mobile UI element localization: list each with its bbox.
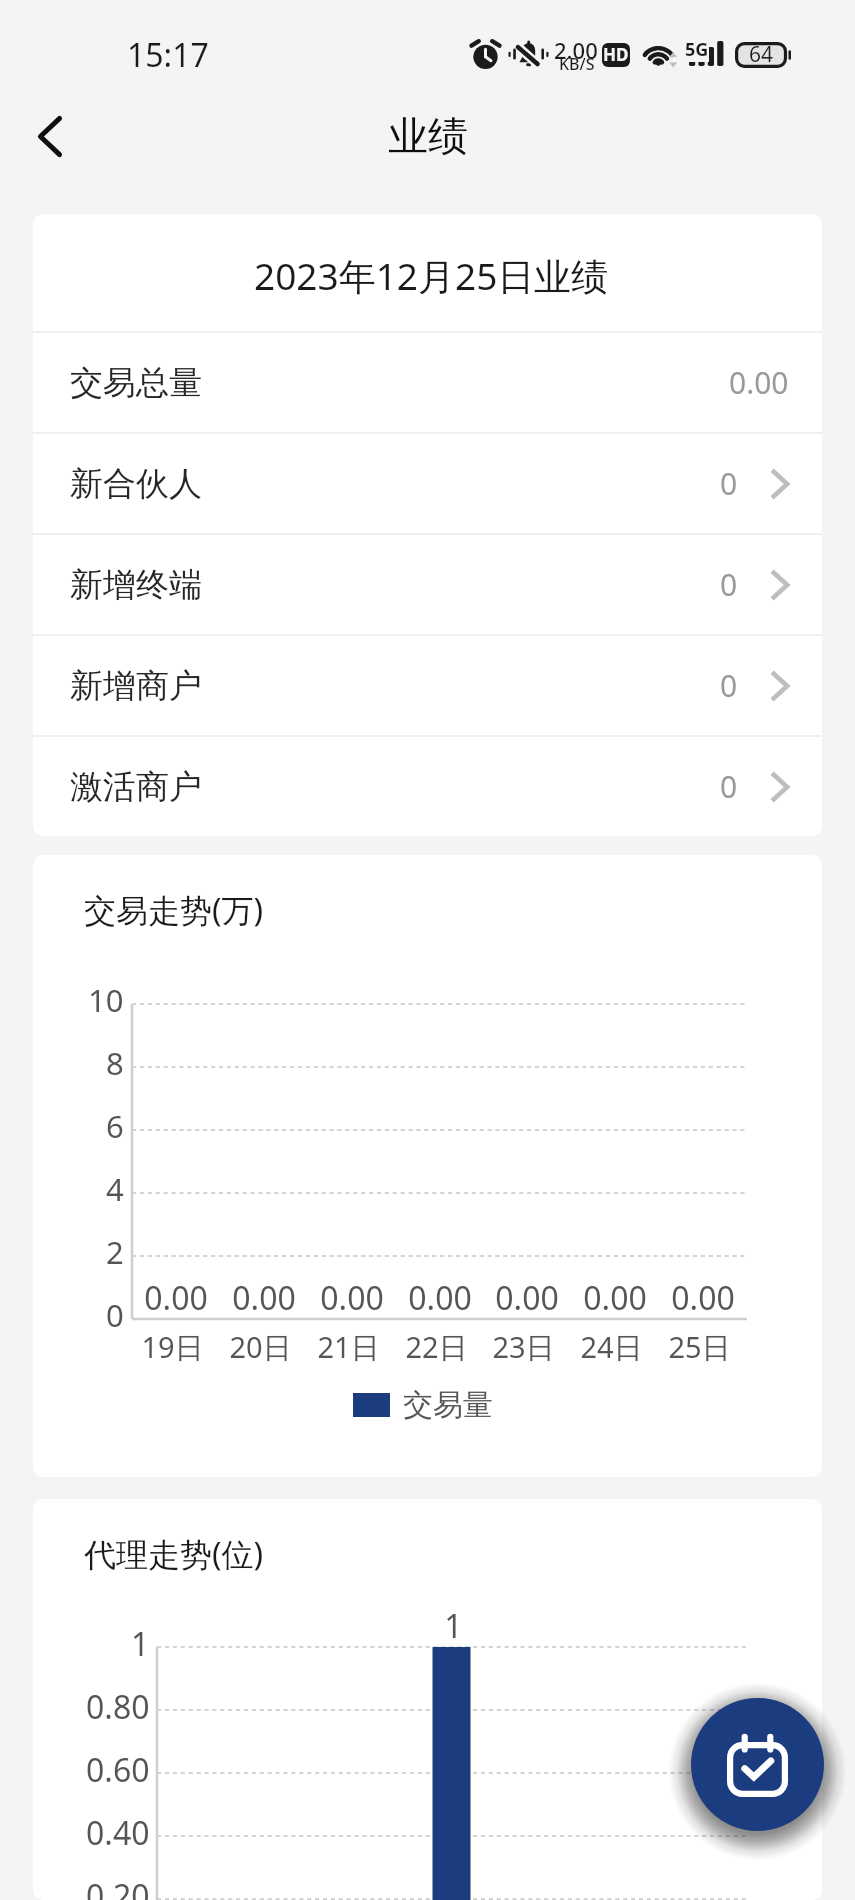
staticText: 25日	[668, 1327, 731, 1367]
staticText: 激活商户	[70, 766, 202, 808]
staticText: 0.00	[232, 1276, 296, 1320]
staticText: 业绩	[388, 111, 468, 161]
button[interactable]: 激活商户	[33, 737, 822, 836]
staticText: 0.00	[583, 1276, 647, 1320]
staticText: 21日	[317, 1327, 380, 1367]
staticText: 0	[720, 463, 738, 504]
staticText: 5G	[685, 37, 709, 62]
staticText: 2.00	[554, 35, 598, 65]
staticText: 交易总量	[70, 362, 202, 404]
staticText: 2	[106, 1231, 124, 1273]
staticText: 24日	[580, 1327, 643, 1367]
staticText: 0	[720, 766, 738, 807]
staticText: 20日	[229, 1327, 292, 1367]
staticText: 19日	[141, 1327, 204, 1367]
staticText: 交易量	[403, 1386, 493, 1424]
staticText: 0.00	[729, 362, 789, 403]
staticText: 新增商户	[70, 665, 202, 707]
staticText: 1	[444, 1604, 463, 1648]
staticText: 22日	[405, 1327, 468, 1367]
staticText: 1	[131, 1622, 150, 1666]
staticText: 6	[106, 1105, 124, 1147]
staticText: 0.00	[671, 1276, 735, 1320]
staticText: 0.60	[86, 1748, 150, 1792]
staticText: 0.00	[408, 1276, 472, 1320]
staticText: 15:17	[127, 33, 209, 77]
staticText: 交易走势(万)	[84, 888, 264, 932]
staticText: 10	[88, 979, 124, 1021]
button[interactable]: Back	[12, 98, 88, 174]
staticText: 0.00	[495, 1276, 559, 1320]
staticText: HD	[603, 43, 629, 66]
staticText: 0.40	[86, 1811, 150, 1855]
staticText: 0.20	[86, 1874, 150, 1900]
staticText: 0.00	[320, 1276, 384, 1320]
staticText: 8	[106, 1042, 124, 1084]
staticText: 64	[749, 40, 774, 69]
staticText: 2023年12月25日业绩	[254, 250, 609, 301]
staticText: 新增终端	[70, 564, 202, 606]
button[interactable]: Select date	[691, 1698, 824, 1831]
staticText: 0	[720, 564, 738, 605]
staticText: KB/S	[559, 53, 595, 75]
staticText: 代理走势(位)	[84, 1532, 264, 1576]
staticText: 0.00	[144, 1276, 208, 1320]
button[interactable]: 新增终端	[33, 535, 822, 634]
staticText: 新合伙人	[70, 463, 202, 505]
staticText: 0.80	[86, 1685, 150, 1729]
button[interactable]: 新增商户	[33, 636, 822, 735]
staticText: 0	[720, 665, 738, 706]
staticText: 4	[106, 1168, 124, 1210]
button[interactable]: 交易总量	[33, 333, 822, 432]
staticText: 23日	[492, 1327, 555, 1367]
button[interactable]: 新合伙人	[33, 434, 822, 533]
staticText: 0	[106, 1294, 124, 1336]
